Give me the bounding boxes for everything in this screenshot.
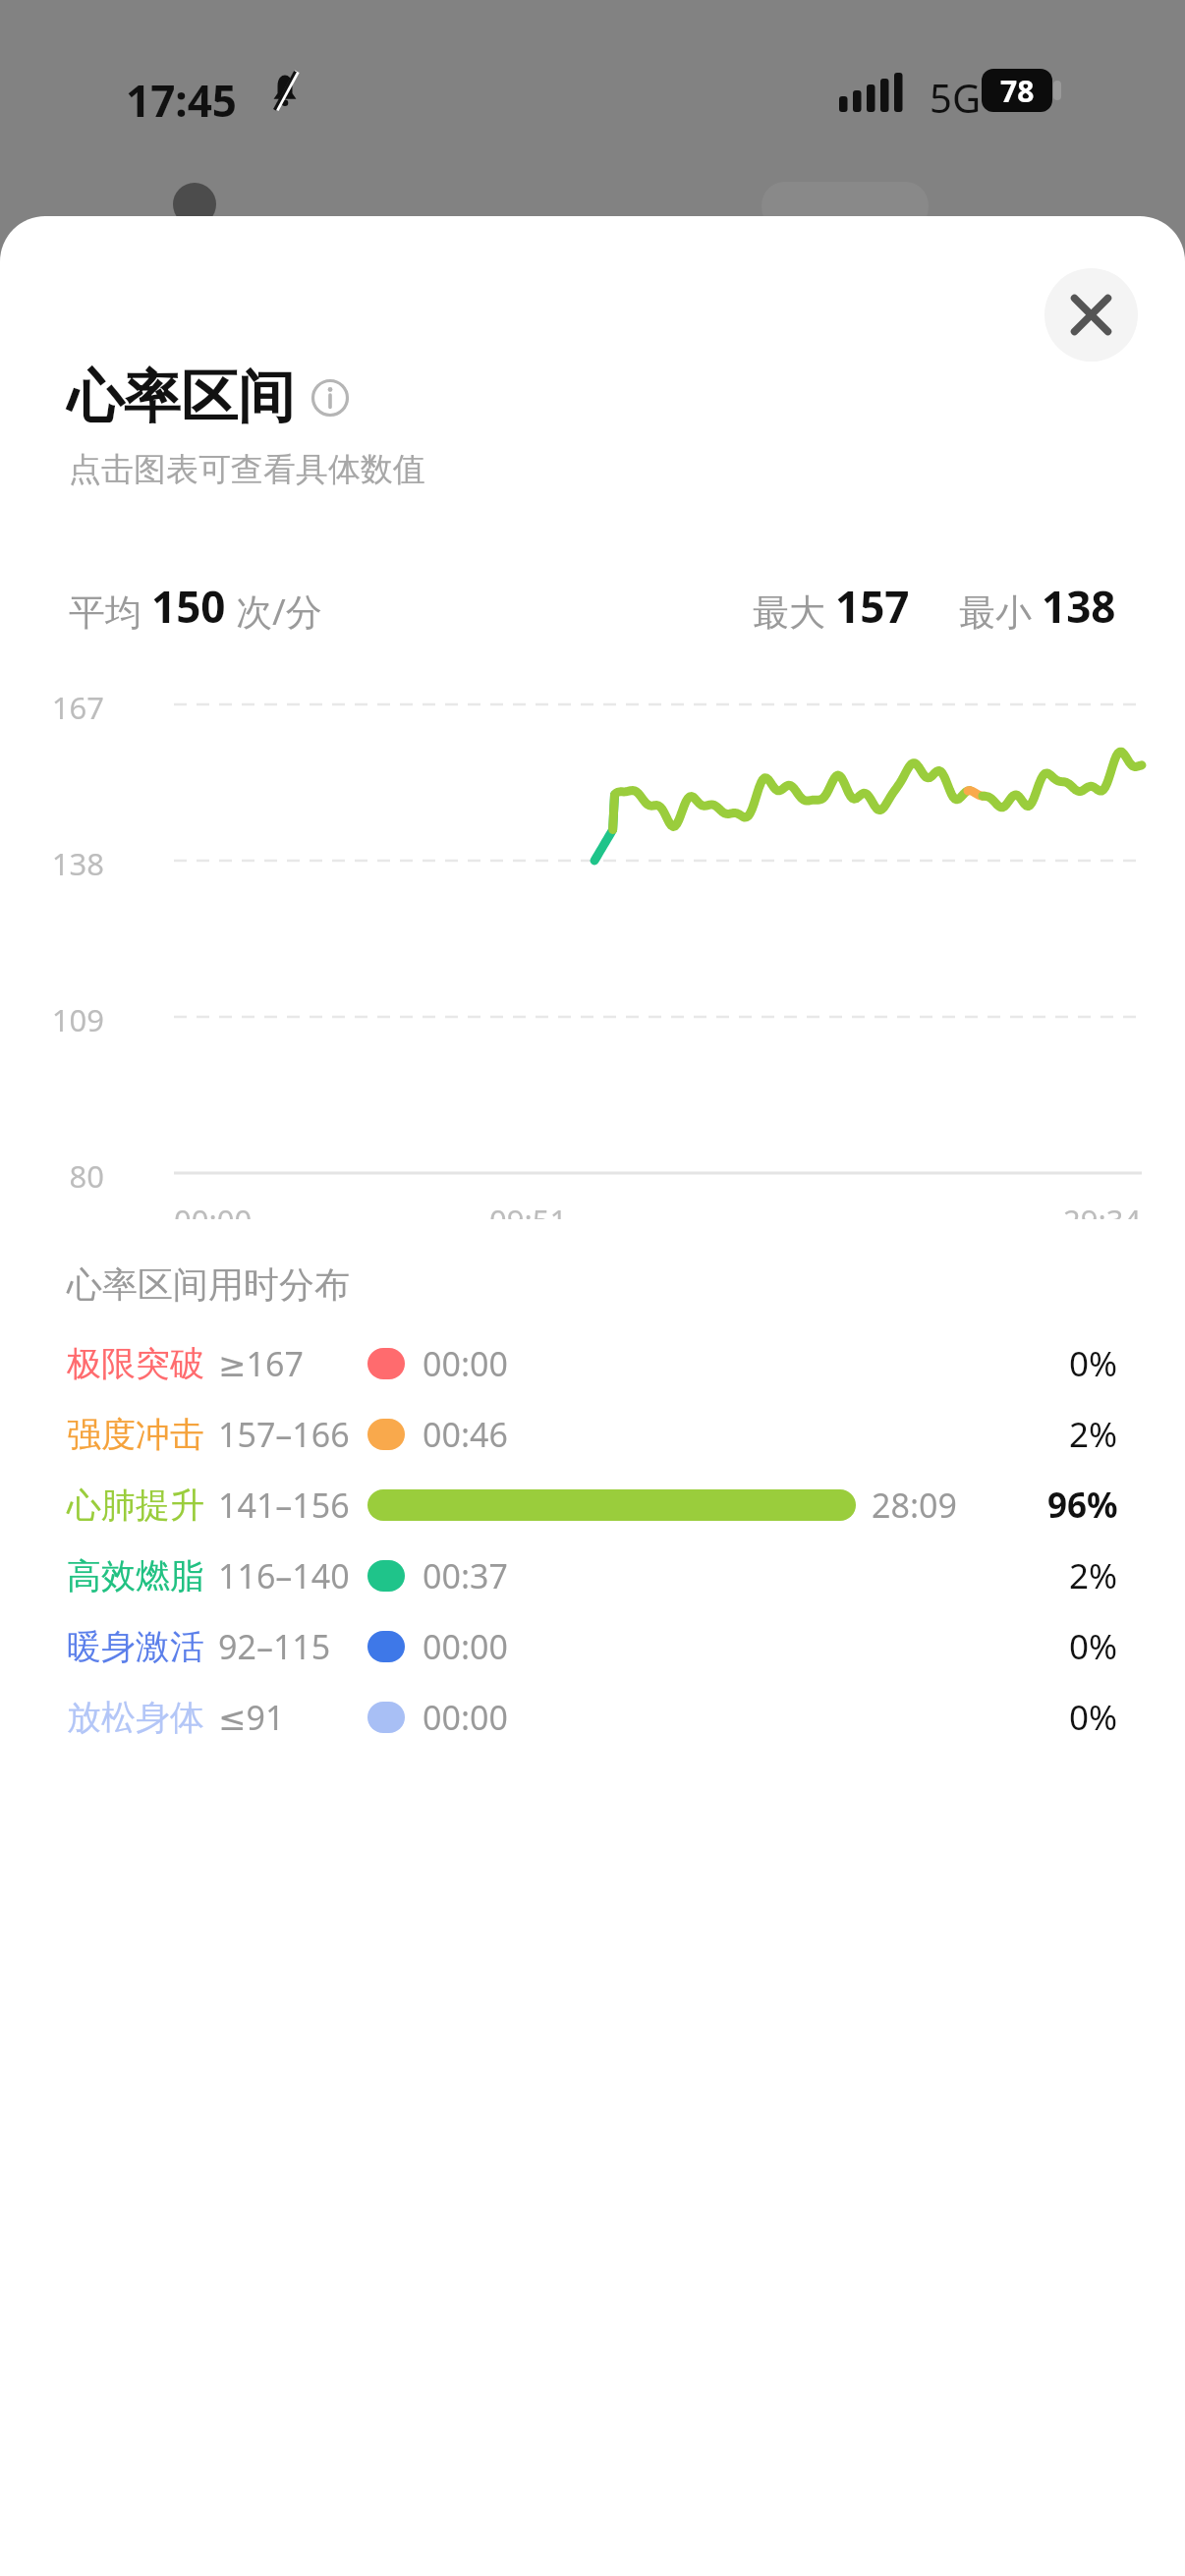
staticText: 167 [39,687,104,728]
staticText: 2% [1069,1552,1118,1599]
staticText: 157 [835,577,910,636]
staticText: 00:00 [423,1624,508,1669]
button[interactable]: 强度冲击 [0,1399,1185,1470]
staticText: 00:46 [423,1412,508,1457]
staticText: 平均 [69,589,141,636]
button[interactable]: 放松身体 [0,1682,1185,1753]
staticText: 0% [1069,1694,1118,1741]
staticText: 次/分 [236,586,322,636]
staticText: 138 [39,843,104,884]
staticText: 150 [151,577,226,636]
staticText: 最小 [959,589,1032,636]
staticText: 最大 [753,589,825,636]
staticText: 109 [39,999,104,1040]
staticText: 强度冲击 [67,1413,204,1456]
staticText: 09:51 [489,1200,568,1219]
staticText: 29:34 [1063,1200,1142,1219]
staticText: 00:00 [174,1200,253,1219]
button[interactable]: 心肺提升 [0,1470,1185,1540]
staticText: 78 [1000,71,1035,111]
button[interactable]: 暖身激活 [0,1611,1185,1682]
staticText: 00:37 [423,1553,508,1598]
staticText: 116–140 [218,1553,350,1598]
staticText: 0% [1069,1340,1118,1387]
staticText: 00:00 [423,1341,508,1386]
staticText: 高效燃脂 [67,1554,204,1597]
staticText: 2% [1069,1411,1118,1458]
button[interactable]: 说明 [310,378,350,418]
staticText: 心肺提升 [67,1484,204,1527]
staticText: 心率区间用时分布 [67,1262,350,1307]
button[interactable]: 极限突破 [0,1328,1185,1399]
staticText: 00:00 [423,1695,508,1740]
staticText: 5G [930,71,981,124]
staticText: 17:45 [126,71,238,130]
staticText: 138 [1042,577,1116,636]
staticText: 141–156 [218,1483,350,1528]
staticText: ≤91 [218,1695,285,1740]
staticText: 心率区间 [67,362,295,433]
staticText: 80 [39,1155,104,1197]
button[interactable]: 关闭 [1044,268,1138,362]
staticText: 放松身体 [67,1696,204,1739]
staticText: 暖身激活 [67,1625,204,1668]
staticText: 157–166 [218,1412,350,1457]
staticText: 92–115 [218,1624,331,1669]
staticText: 点击图表可查看具体数值 [69,449,425,490]
staticText: 极限突破 [67,1342,204,1385]
staticText: 28:09 [872,1483,957,1528]
button[interactable]: 167 [0,669,1185,1219]
staticText: ≥167 [218,1341,304,1386]
staticText: 0% [1069,1623,1118,1670]
button[interactable]: 高效燃脂 [0,1540,1185,1611]
staticText: 96% [1047,1482,1118,1529]
